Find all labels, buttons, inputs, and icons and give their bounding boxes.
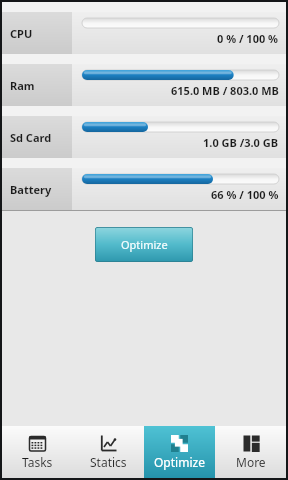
button[interactable]: Optimize [95, 227, 193, 262]
other: More [243, 435, 260, 452]
button[interactable]: Ram [2, 64, 286, 106]
button[interactable]: Statics [73, 426, 144, 478]
button[interactable]: More [215, 426, 286, 478]
staticText: Tasks [22, 454, 53, 470]
button[interactable]: Tasks [2, 426, 73, 478]
button[interactable]: Optimize [144, 426, 215, 478]
button[interactable]: Sd Card [2, 116, 286, 158]
staticText: Optimize [121, 237, 168, 252]
staticText: CPU [10, 26, 33, 41]
other: Tasks [29, 435, 46, 452]
staticText: 615.0 MB / 803.0 MB [171, 83, 279, 98]
staticText: More [236, 454, 266, 470]
staticText: Statics [90, 454, 127, 470]
staticText: Ram [10, 78, 35, 93]
button[interactable]: CPU [2, 12, 286, 54]
button[interactable]: Battery [2, 168, 286, 210]
staticText: 1.0 GB /3.0 GB [203, 135, 279, 150]
staticText: 0 % / 100 % [217, 31, 279, 46]
staticText: 66 % / 100 % [211, 187, 279, 202]
other: Optimize [171, 435, 188, 452]
staticText: Optimize [154, 454, 205, 470]
staticText: Sd Card [10, 130, 52, 145]
staticText: Battery [10, 182, 52, 197]
other: Statics [100, 435, 117, 452]
